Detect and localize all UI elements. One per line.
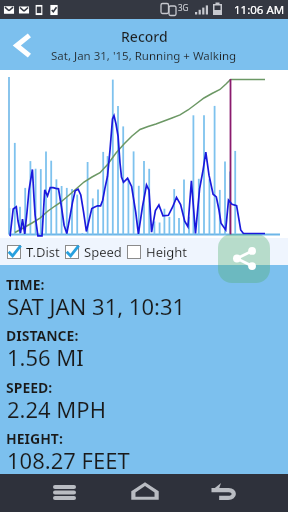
staticText: 2.24 MPH bbox=[7, 394, 106, 424]
staticText: TIME: bbox=[6, 275, 45, 294]
staticText: Record bbox=[121, 27, 168, 46]
staticText: 11:06 AM bbox=[234, 2, 285, 18]
staticText: Speed bbox=[84, 243, 122, 261]
button[interactable]: T.Dist bbox=[7, 243, 60, 261]
staticText: HEIGHT: bbox=[6, 429, 63, 448]
button[interactable]: Home bbox=[125, 476, 165, 506]
staticText: T.Dist bbox=[26, 243, 60, 261]
staticText: DISTANCE: bbox=[6, 326, 79, 345]
staticText: Height bbox=[146, 243, 188, 261]
button[interactable]: Speed bbox=[65, 243, 122, 261]
staticText: 108.27 FEET bbox=[7, 445, 130, 475]
button[interactable]: Back bbox=[4, 27, 40, 63]
button[interactable]: Menu bbox=[44, 477, 84, 507]
button[interactable]: Share bbox=[218, 234, 270, 283]
staticText: 3G bbox=[178, 2, 189, 13]
button[interactable]: Height bbox=[127, 243, 188, 261]
staticText: Sat, Jan 31, '15, Running + Walking bbox=[51, 48, 237, 64]
button[interactable]: Back bbox=[203, 476, 243, 506]
staticText: 1.56 MI bbox=[7, 342, 84, 372]
staticText: SAT JAN 31, 10:31 bbox=[7, 291, 186, 321]
staticText: SPEED: bbox=[6, 378, 53, 397]
